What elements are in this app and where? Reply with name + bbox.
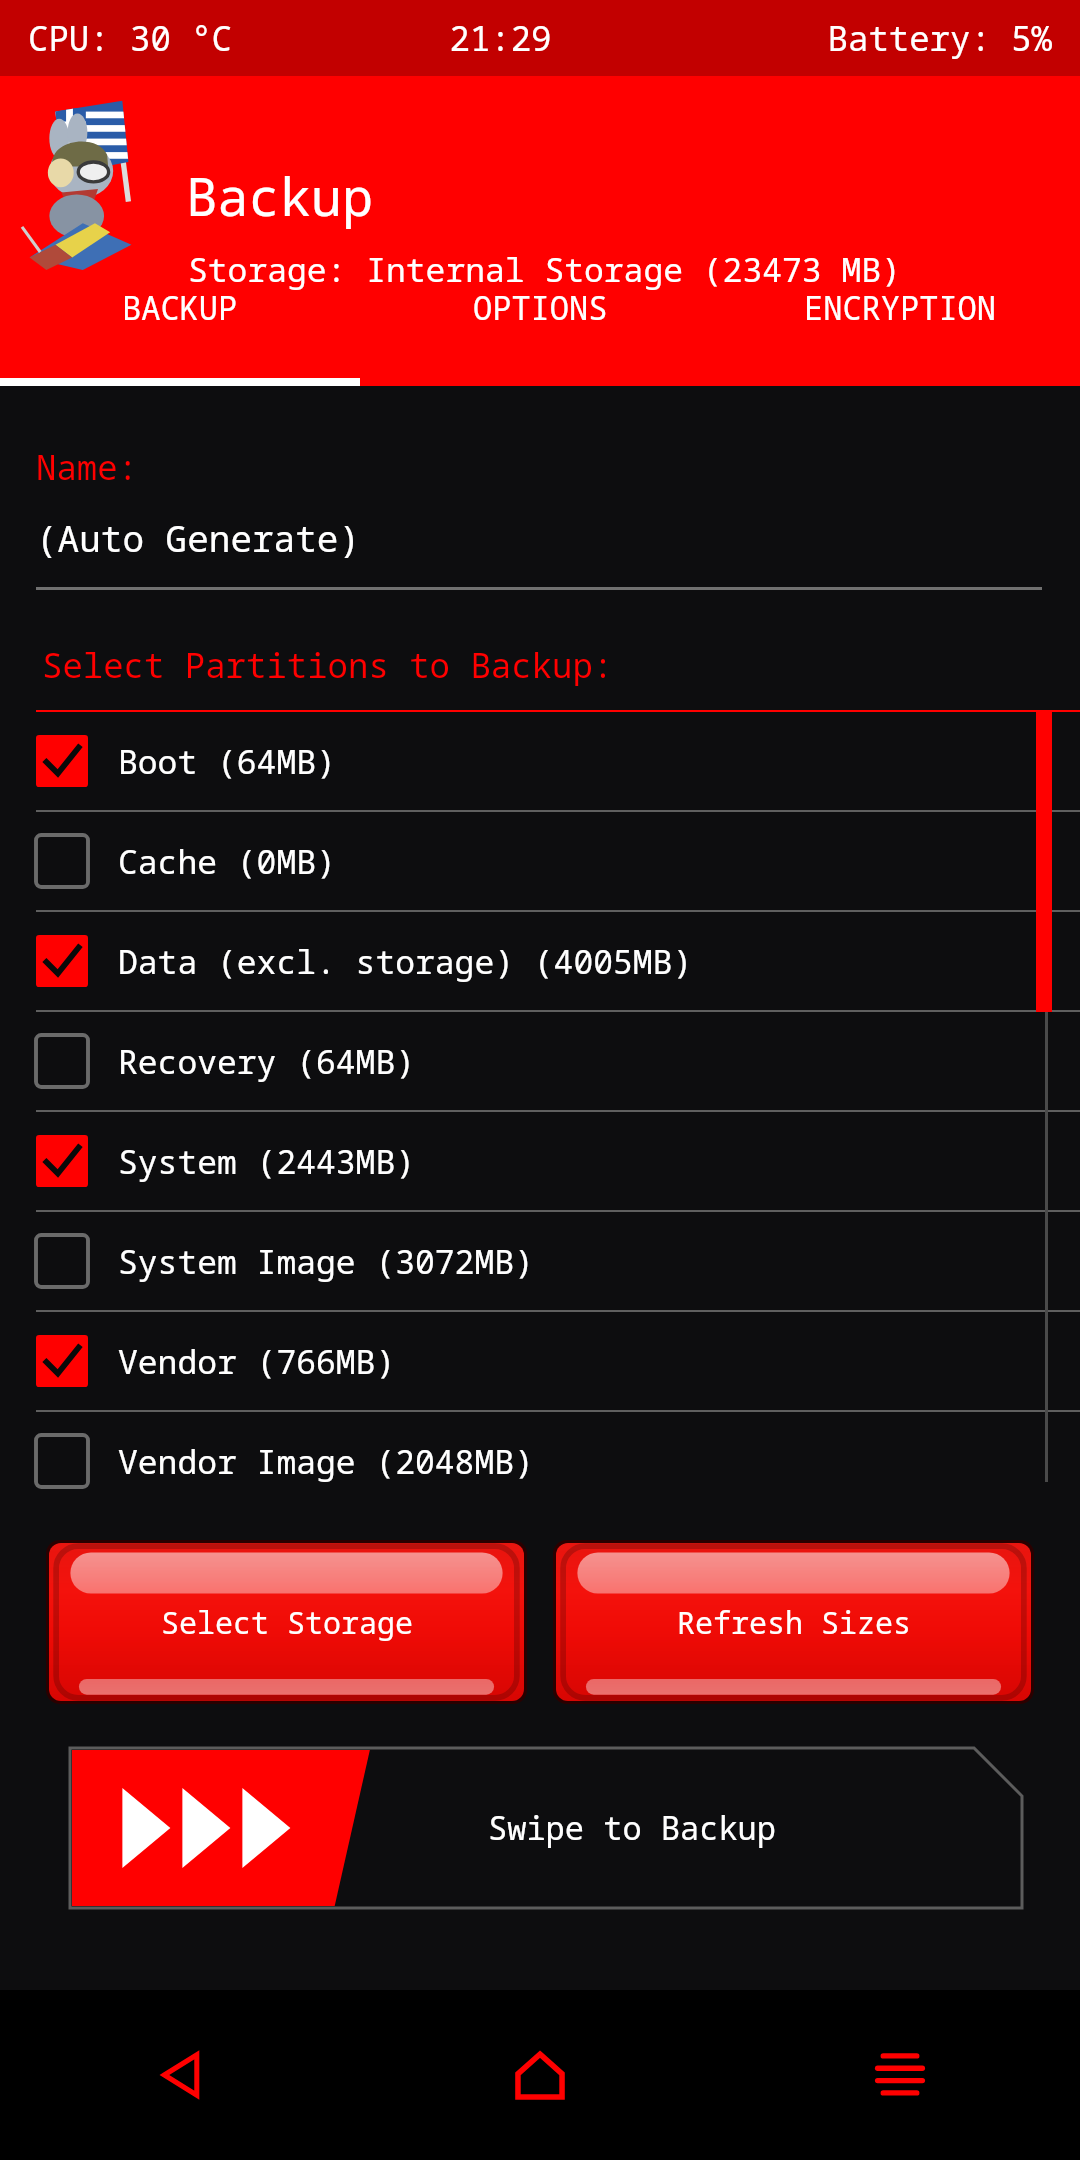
staticText: Backup — [186, 160, 374, 231]
button[interactable]: Menu — [720, 1990, 1080, 2160]
staticText: Recovery (64MB) — [118, 1039, 415, 1084]
button[interactable]: OPTIONS — [360, 278, 720, 386]
button[interactable]: Data (excl. storage) (4005MB) — [0, 912, 1080, 1010]
staticText: BACKUP — [122, 286, 238, 330]
button[interactable]: System Image (3072MB) — [0, 1212, 1080, 1310]
button[interactable]: ENCRYPTION — [720, 278, 1080, 386]
staticText: Battery: 5% — [658, 15, 1052, 61]
staticText: CPU: 30 °C — [28, 15, 343, 61]
button[interactable]: BACKUP — [0, 278, 360, 386]
staticText: 21:29 — [343, 15, 658, 61]
staticText: System (2443MB) — [118, 1139, 415, 1184]
button[interactable]: Swipe to Backup — [70, 1748, 1022, 1908]
staticText: Cache (0MB) — [118, 839, 336, 884]
staticText: Swipe to Backup — [488, 1806, 777, 1850]
staticText: Select Partitions to Backup: — [42, 642, 614, 688]
staticText: OPTIONS — [473, 286, 608, 330]
staticText: (Auto Generate) — [36, 514, 361, 563]
staticText: Boot (64MB) — [118, 739, 336, 784]
button[interactable]: Select Storage — [49, 1543, 524, 1701]
staticText: Data (excl. storage) (4005MB) — [118, 939, 693, 984]
staticText: Select Storage — [161, 1602, 413, 1643]
button[interactable]: Home — [360, 1990, 720, 2160]
button[interactable]: System (2443MB) — [0, 1112, 1080, 1210]
button[interactable]: Refresh Sizes — [556, 1543, 1031, 1701]
staticText: Storage: Internal Storage (23473 MB) — [188, 247, 901, 292]
staticText: Name: — [36, 444, 138, 490]
button[interactable]: Recovery (64MB) — [0, 1012, 1080, 1110]
button[interactable]: Vendor Image (2048MB) — [0, 1412, 1080, 1510]
staticText: Vendor (766MB) — [118, 1339, 396, 1384]
staticText: ENCRYPTION — [804, 286, 997, 330]
staticText: Vendor Image (2048MB) — [118, 1439, 534, 1484]
button[interactable]: Boot (64MB) — [0, 712, 1080, 810]
button[interactable]: Cache (0MB) — [0, 812, 1080, 910]
button[interactable]: Back — [0, 1990, 360, 2160]
staticText: System Image (3072MB) — [118, 1239, 534, 1284]
staticText: Refresh Sizes — [677, 1602, 911, 1643]
button[interactable]: Vendor (766MB) — [0, 1312, 1080, 1410]
